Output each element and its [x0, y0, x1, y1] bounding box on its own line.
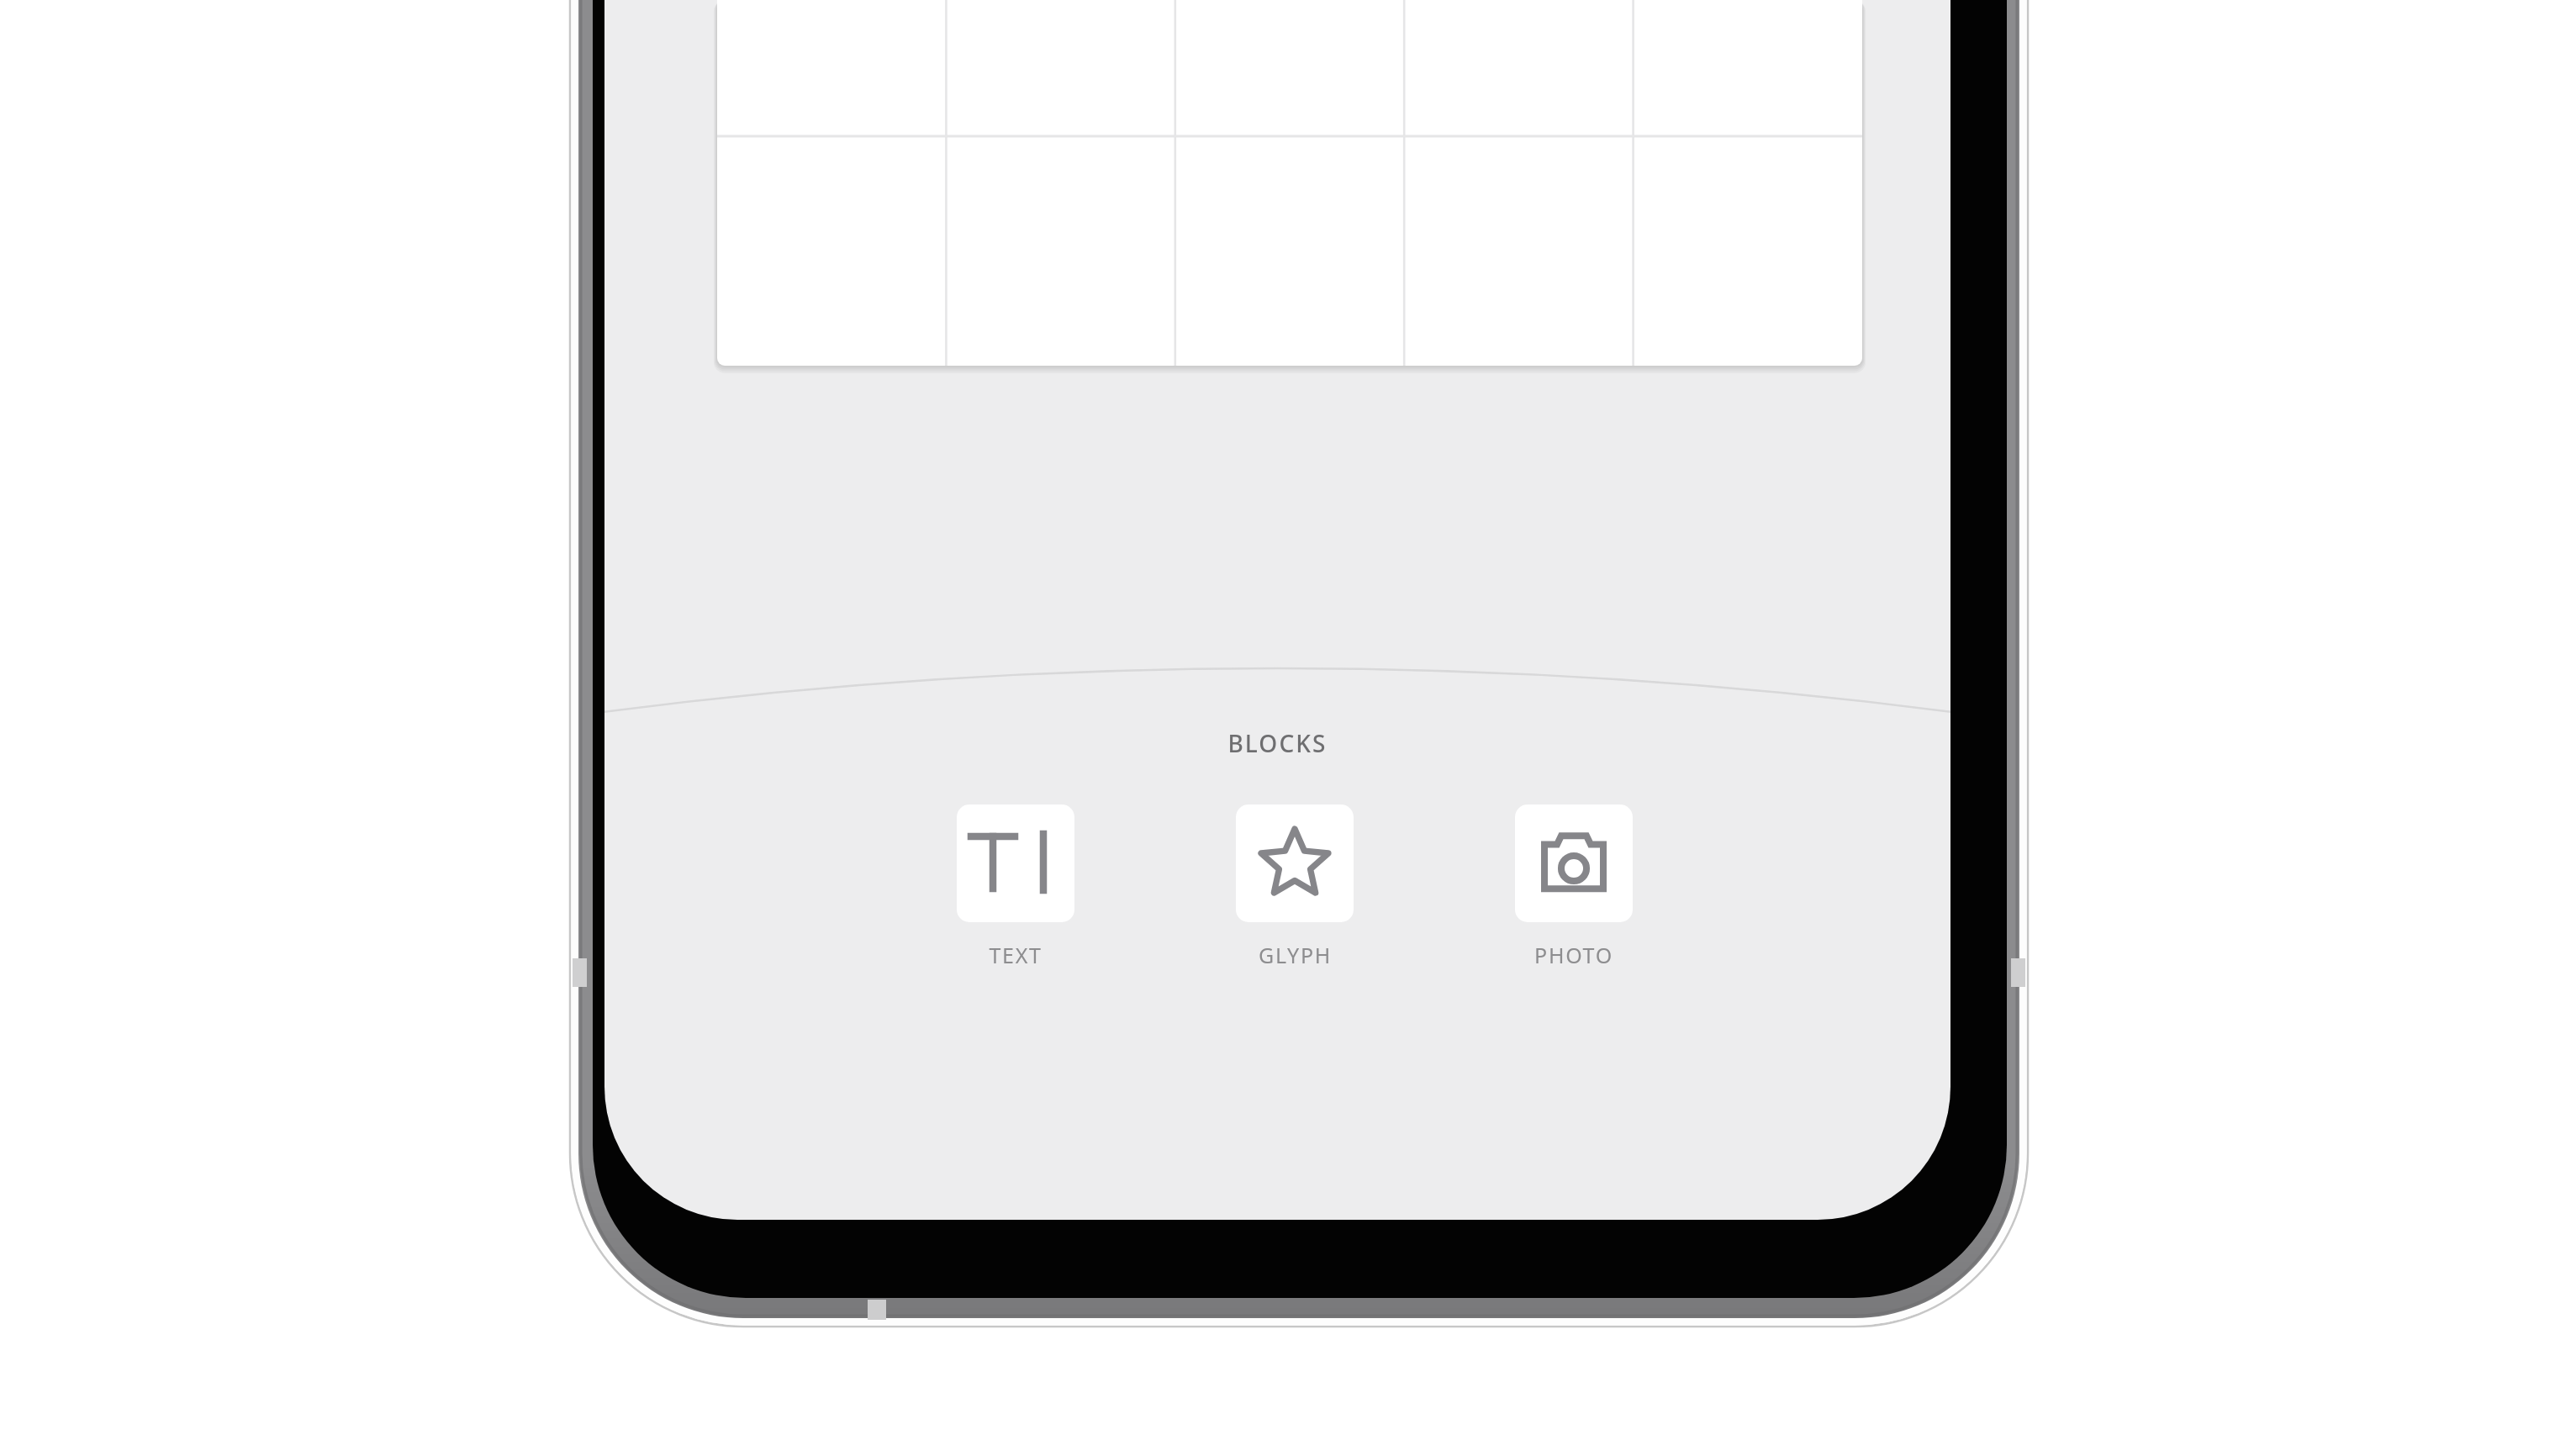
- staticText: TEXT: [989, 941, 1043, 969]
- other: PHOTO: [1515, 804, 1633, 922]
- button[interactable]: PHOTO: [1481, 796, 1666, 969]
- button[interactable]: TEXT: [923, 796, 1108, 969]
- staticText: GLYPH: [1259, 941, 1332, 969]
- staticText: PHOTO: [1534, 941, 1613, 969]
- other: GLYPH: [1236, 804, 1354, 922]
- other: TEXT: [957, 804, 1074, 922]
- staticText: BLOCKS: [1227, 727, 1328, 759]
- button[interactable]: GLYPH: [1202, 796, 1387, 969]
